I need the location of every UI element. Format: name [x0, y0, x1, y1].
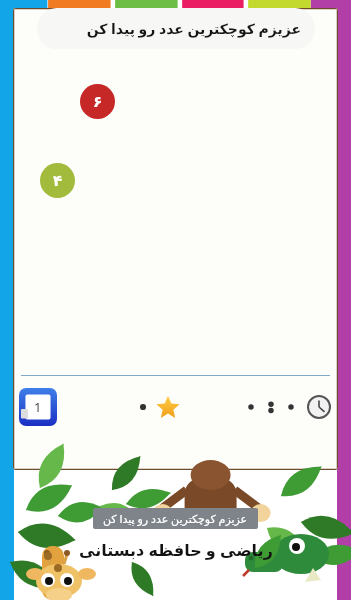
button[interactable]: ۶: [80, 84, 115, 119]
button[interactable]: ۴: [40, 163, 75, 198]
button[interactable]: Timer: [306, 394, 332, 420]
button[interactable]: Star score: [155, 394, 181, 420]
staticText: عزیزم کوچکترین عدد رو پیدا کن: [103, 511, 248, 526]
staticText: ریاضی و حافظه دبستانی: [79, 539, 273, 561]
staticText: 1: [34, 398, 42, 416]
staticText: ۴: [53, 172, 63, 189]
staticText: ۶: [93, 93, 103, 110]
button[interactable]: Level counter: [19, 388, 57, 426]
staticText: عزیزم کوچکترین عدد رو پیدا کن: [86, 19, 301, 38]
button[interactable]: عزیزم کوچکترین عدد رو پیدا کن: [37, 8, 315, 49]
